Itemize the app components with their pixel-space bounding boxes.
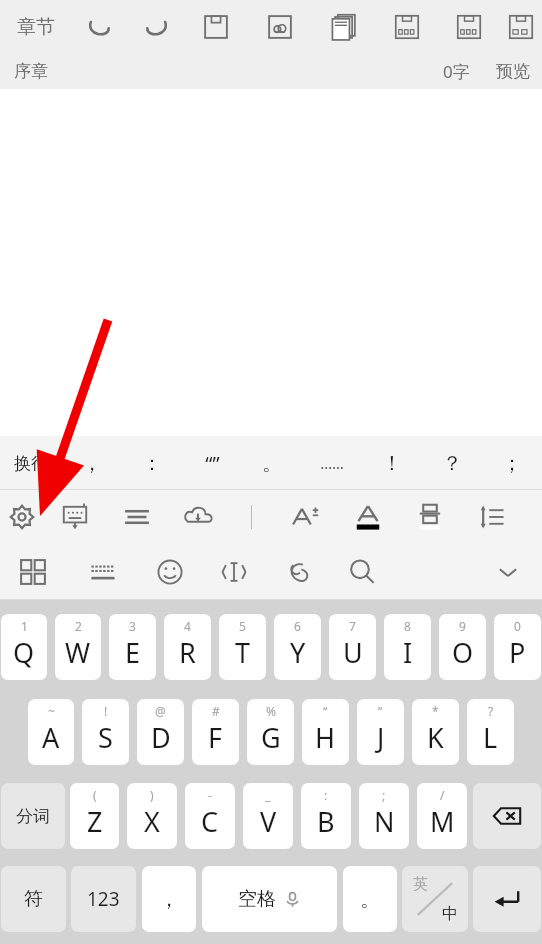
button[interactable]: ；: [482, 436, 542, 490]
button[interactable]: _: [243, 783, 293, 849]
staticText: G: [261, 719, 281, 756]
staticText: H: [315, 719, 336, 756]
button[interactable]: 8: [384, 614, 431, 680]
button[interactable]: 4: [164, 614, 211, 680]
button[interactable]: 空格: [202, 866, 337, 932]
button[interactable]: 0: [494, 614, 541, 680]
staticText: !: [104, 703, 108, 719]
staticText: 9: [459, 618, 466, 634]
staticText: 5: [239, 618, 246, 634]
staticText: 3: [129, 618, 136, 634]
staticText: 4: [184, 618, 191, 634]
button[interactable]: /: [417, 783, 467, 849]
staticText: Z: [87, 803, 103, 840]
button[interactable]: Panels: [4, 544, 62, 600]
button[interactable]: 7: [329, 614, 376, 680]
button[interactable]: Export PNG: [500, 0, 542, 54]
staticText: J: [377, 719, 385, 756]
button[interactable]: Enter: [473, 866, 541, 932]
staticText: N: [374, 803, 395, 840]
staticText: ，: [159, 887, 179, 912]
button[interactable]: Keyboard: [74, 544, 132, 600]
staticText: “: [323, 703, 328, 719]
staticText: Y: [290, 634, 306, 671]
button[interactable]: 9: [439, 614, 486, 680]
staticText: 123: [87, 886, 120, 912]
button[interactable]: ！: [362, 436, 422, 490]
button[interactable]: ;: [359, 783, 409, 849]
staticText: ”: [378, 703, 383, 719]
button[interactable]: 符: [1, 866, 66, 932]
button[interactable]: *: [412, 699, 459, 765]
button[interactable]: Insert: [206, 544, 262, 600]
button[interactable]: %: [247, 699, 294, 765]
button[interactable]: ?: [467, 699, 514, 765]
button[interactable]: Switch language: [402, 866, 468, 932]
button[interactable]: 。: [242, 436, 302, 490]
staticText: 2: [75, 618, 82, 634]
button[interactable]: @: [137, 699, 184, 765]
staticText: 换行: [14, 453, 48, 474]
button[interactable]: -: [185, 783, 235, 849]
staticText: ；: [502, 451, 522, 476]
staticText: W: [65, 634, 91, 671]
button[interactable]: Text color: [337, 490, 399, 544]
button[interactable]: #: [192, 699, 239, 765]
button[interactable]: ？: [422, 436, 482, 490]
button[interactable]: 1: [1, 614, 47, 680]
button[interactable]: ~: [28, 699, 74, 765]
button[interactable]: ): [127, 783, 177, 849]
button[interactable]: Search: [334, 544, 390, 600]
button[interactable]: Attach: [270, 544, 326, 600]
button[interactable]: 换行: [0, 436, 62, 490]
button[interactable]: 。: [343, 866, 397, 932]
button[interactable]: Undo: [72, 0, 128, 54]
button[interactable]: Font size: [275, 490, 337, 544]
button[interactable]: Save to cloud: [248, 0, 312, 54]
button[interactable]: Export TXT: [376, 0, 438, 54]
staticText: R: [179, 634, 196, 671]
button[interactable]: ”: [357, 699, 404, 765]
button[interactable]: ：: [122, 436, 182, 490]
button[interactable]: Emoji: [142, 544, 198, 600]
button[interactable]: (: [70, 783, 119, 849]
button[interactable]: !: [82, 699, 129, 765]
button[interactable]: ，: [142, 866, 196, 932]
button[interactable]: 5: [219, 614, 266, 680]
button[interactable]: 预览: [492, 61, 534, 82]
button[interactable]: ，: [62, 436, 122, 490]
staticText: T: [235, 634, 251, 671]
staticText: 预览: [496, 61, 530, 82]
staticText: F: [208, 719, 223, 756]
button[interactable]: :: [301, 783, 351, 849]
button[interactable]: Background color: [399, 490, 461, 544]
button[interactable]: Align: [106, 490, 167, 544]
button[interactable]: Redo: [128, 0, 184, 54]
button[interactable]: 2: [55, 614, 101, 680]
staticText: %: [266, 703, 276, 719]
staticText: @: [155, 703, 166, 719]
button[interactable]: Backspace: [473, 783, 541, 849]
staticText: 0字: [443, 60, 470, 83]
button[interactable]: 3: [109, 614, 156, 680]
button[interactable]: Settings: [0, 490, 44, 544]
button[interactable]: Save: [184, 0, 248, 54]
button[interactable]: 123: [71, 866, 136, 932]
staticText: ：: [142, 451, 162, 476]
button[interactable]: Line spacing: [461, 490, 523, 544]
button[interactable]: Keyboard panel: [44, 490, 106, 544]
button[interactable]: 6: [274, 614, 321, 680]
staticText: 0: [514, 618, 521, 634]
button[interactable]: Export DOC: [438, 0, 500, 54]
button[interactable]: 章节: [0, 0, 72, 54]
staticText: ……: [320, 453, 344, 473]
staticText: 英: [413, 875, 428, 894]
button[interactable]: Collapse: [480, 544, 536, 600]
button[interactable]: ……: [302, 436, 362, 490]
button[interactable]: Download: [167, 490, 228, 544]
button[interactable]: “”: [182, 436, 242, 490]
button[interactable]: 分词: [1, 783, 65, 849]
button[interactable]: “: [302, 699, 349, 765]
button[interactable]: Export all: [312, 0, 376, 54]
